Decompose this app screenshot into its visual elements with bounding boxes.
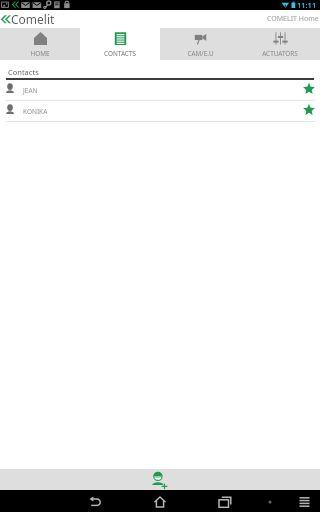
button[interactable]: ACTUATORS [240, 28, 320, 60]
button[interactable]: CONTACTS [80, 28, 160, 60]
staticText: KONIKA [23, 107, 48, 116]
button[interactable]: Add contact [150, 470, 172, 490]
staticText: HOME [30, 49, 50, 58]
button[interactable]: CAM/E.U [160, 28, 240, 60]
button[interactable]: JEAN [0, 80, 320, 100]
staticText: 11:11 [297, 0, 317, 10]
staticText: CAM/E.U [187, 49, 214, 58]
staticText: Comelit [11, 11, 55, 27]
staticText: ACTUATORS [262, 49, 298, 58]
staticText: COMELIT Home [267, 14, 319, 24]
staticText: JEAN [23, 86, 38, 95]
button[interactable]: HOME [0, 28, 80, 60]
staticText: CONTACTS [104, 49, 136, 58]
staticText: Contacts [8, 67, 39, 77]
button[interactable]: KONIKA [0, 101, 320, 121]
